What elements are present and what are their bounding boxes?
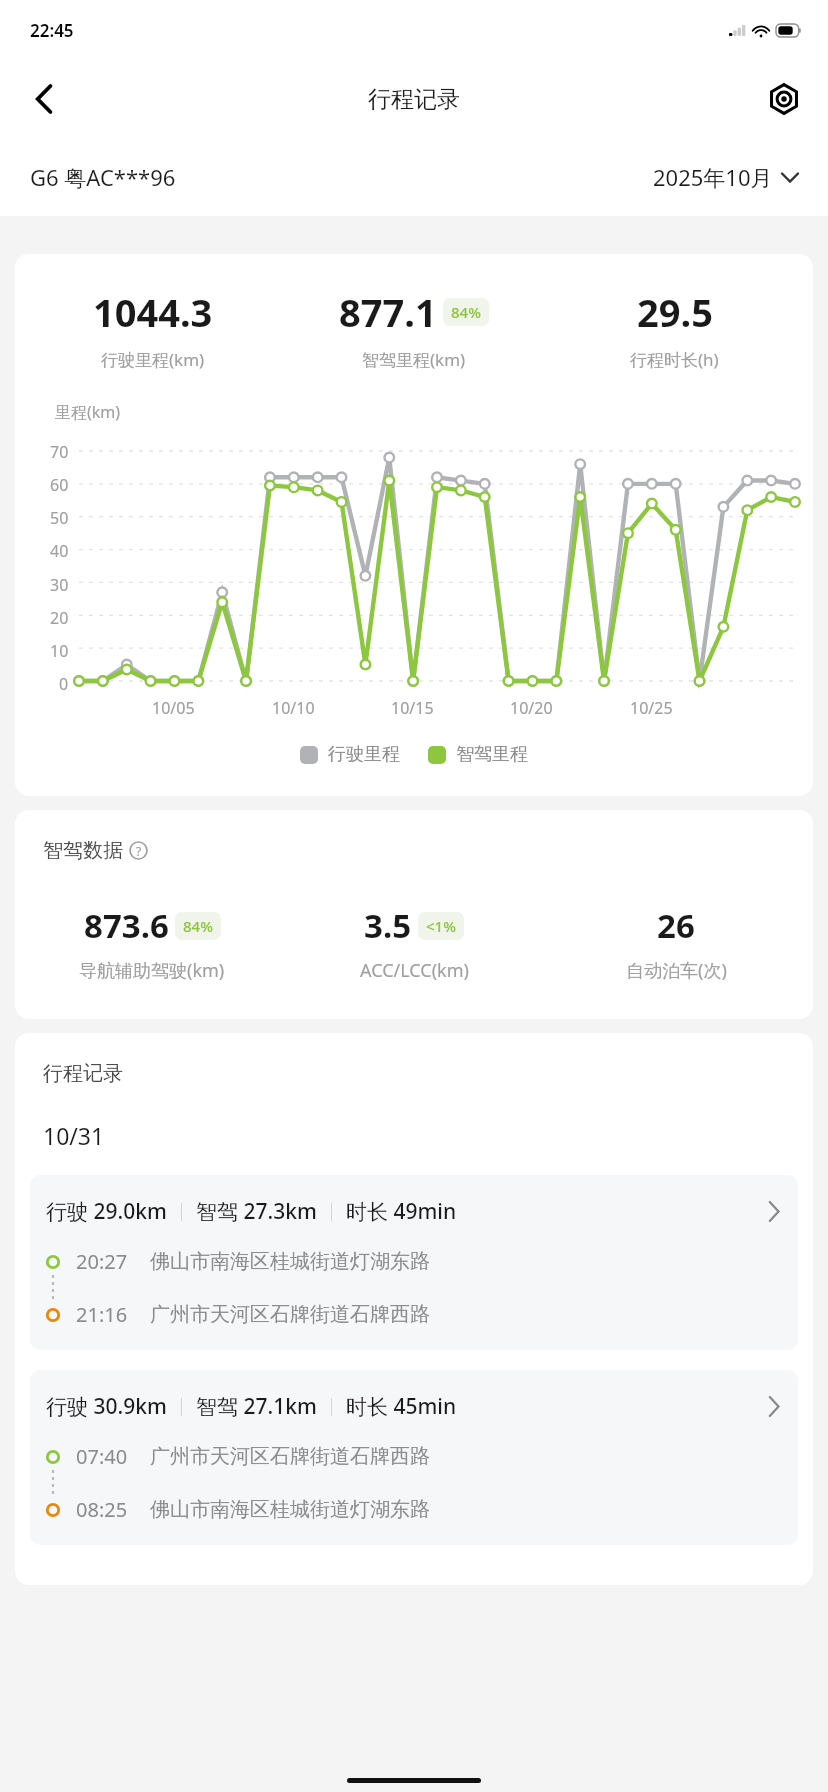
button[interactable]: 智驾数据 bbox=[43, 838, 148, 863]
staticText: 智驾 27.3km bbox=[196, 1197, 317, 1226]
staticText: 智驾数据 bbox=[43, 838, 123, 863]
staticText: 广州市天河区石牌街道石牌西路 bbox=[150, 1302, 430, 1327]
staticText: 行驶 29.0km bbox=[46, 1197, 167, 1226]
staticText: 08:25 bbox=[76, 1496, 128, 1523]
button[interactable]: Settings bbox=[758, 73, 810, 125]
staticText: 26 bbox=[657, 903, 695, 948]
staticText: 21:16 bbox=[76, 1301, 128, 1328]
button[interactable]: 2025年10月 bbox=[653, 162, 798, 192]
other: Info bbox=[129, 841, 148, 860]
staticText: 3.5 bbox=[364, 903, 412, 948]
staticText: 时长 49min bbox=[346, 1197, 457, 1226]
staticText: 智驾里程(km) bbox=[362, 348, 466, 371]
staticText: 行驶 30.9km bbox=[46, 1392, 167, 1421]
staticText: 10/31 bbox=[43, 1120, 105, 1151]
staticText: 10/25 bbox=[630, 697, 673, 719]
staticText: 自动泊车(次) bbox=[626, 958, 727, 983]
staticText: 导航辅助驾驶(km) bbox=[79, 958, 225, 983]
staticText: 佛山市南海区桂城街道灯湖东路 bbox=[150, 1497, 430, 1522]
staticText: 873.6 bbox=[84, 903, 169, 948]
staticText: ACC/LCC(km) bbox=[360, 958, 469, 983]
staticText: 07:40 bbox=[76, 1443, 128, 1470]
staticText: 1044.3 bbox=[93, 286, 213, 338]
staticText: 40 bbox=[50, 540, 69, 562]
staticText: 10/20 bbox=[510, 697, 553, 719]
staticText: 10/10 bbox=[272, 697, 315, 719]
staticText: ? bbox=[136, 843, 142, 859]
staticText: 10/05 bbox=[152, 697, 195, 719]
staticText: <1% bbox=[426, 916, 456, 936]
staticText: 0 bbox=[59, 673, 69, 695]
staticText: 佛山市南海区桂城街道灯湖东路 bbox=[150, 1249, 430, 1274]
staticText: 行程时长(h) bbox=[630, 348, 719, 371]
button[interactable]: 行驶 29.0km bbox=[30, 1175, 798, 1350]
staticText: 84% bbox=[451, 302, 481, 322]
staticText: 智驾里程 bbox=[456, 743, 528, 766]
button[interactable]: Back bbox=[18, 73, 70, 125]
staticText: 里程(km) bbox=[55, 401, 121, 423]
staticText: 10/15 bbox=[391, 697, 434, 719]
staticText: 22:45 bbox=[30, 19, 74, 42]
staticText: 智驾 27.1km bbox=[196, 1392, 317, 1421]
staticText: 行驶里程(km) bbox=[101, 348, 205, 371]
staticText: G6 粤AC***96 bbox=[30, 162, 176, 192]
staticText: 2025年10月 bbox=[653, 162, 773, 192]
staticText: 20 bbox=[50, 607, 69, 629]
staticText: 30 bbox=[50, 574, 69, 596]
staticText: 877.1 bbox=[339, 286, 437, 338]
staticText: 60 bbox=[50, 474, 69, 496]
button[interactable]: 行驶 30.9km bbox=[30, 1370, 798, 1545]
staticText: 84% bbox=[183, 916, 213, 936]
staticText: 行程记录 bbox=[368, 85, 460, 114]
staticText: 时长 45min bbox=[346, 1392, 457, 1421]
button[interactable]: 智驾里程 bbox=[428, 743, 528, 766]
staticText: 29.5 bbox=[637, 286, 713, 338]
staticText: 70 bbox=[50, 441, 69, 463]
staticText: 行驶里程 bbox=[328, 743, 400, 766]
staticText: 20:27 bbox=[76, 1248, 128, 1275]
staticText: 广州市天河区石牌街道石牌西路 bbox=[150, 1444, 430, 1469]
staticText: 10 bbox=[50, 640, 69, 662]
staticText: 行程记录 bbox=[43, 1061, 123, 1086]
button[interactable]: 行驶里程 bbox=[300, 743, 400, 766]
staticText: 50 bbox=[50, 507, 69, 529]
